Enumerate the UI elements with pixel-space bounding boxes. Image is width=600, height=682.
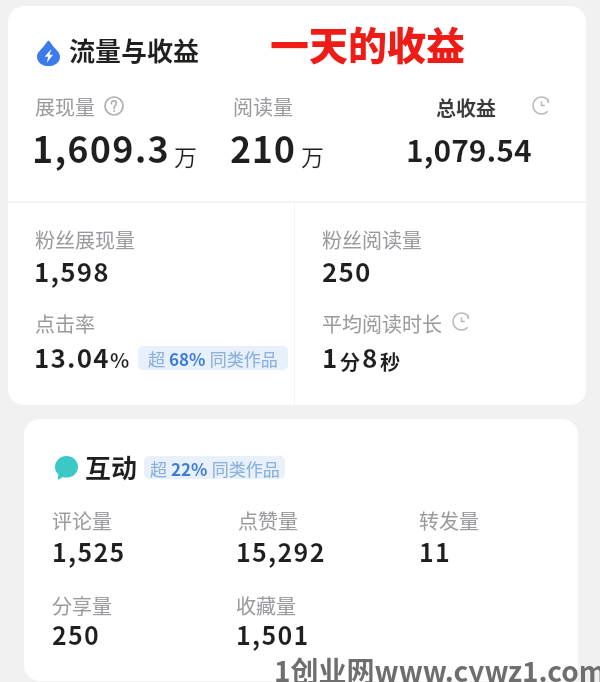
- staticText: 1,079.54: [406, 127, 532, 170]
- staticText: 分享量: [52, 591, 112, 620]
- staticText: 1,598: [34, 252, 110, 290]
- staticText: 250: [322, 252, 372, 290]
- staticText: 点击率: [35, 309, 95, 338]
- staticText: 万: [301, 139, 324, 172]
- staticText: 秒: [380, 347, 400, 376]
- staticText: 阅读量: [233, 92, 293, 121]
- button[interactable]: 数据更新时间: [532, 96, 551, 115]
- staticText: 1,525: [52, 533, 126, 569]
- staticText: 1,609.3: [32, 121, 171, 173]
- staticText: 万: [174, 139, 197, 172]
- staticText: 分: [340, 347, 360, 376]
- staticText: 超: [150, 456, 171, 479]
- staticText: 粉丝阅读量: [322, 225, 422, 254]
- staticText: 平均阅读时长: [322, 309, 442, 338]
- staticText: %: [110, 345, 130, 374]
- staticText: 11: [419, 533, 452, 569]
- staticText: 15,292: [236, 533, 326, 569]
- button[interactable]: 数据更新时间: [452, 312, 471, 331]
- staticText: 一天的收益: [270, 15, 466, 71]
- staticText: 展现量: [35, 92, 95, 121]
- button[interactable]: [24, 419, 578, 681]
- staticText: 粉丝展现量: [35, 225, 135, 254]
- staticText: 超: [148, 346, 169, 370]
- staticText: 同类作品: [208, 456, 280, 479]
- staticText: 同类作品: [206, 346, 278, 370]
- button[interactable]: 超: [144, 456, 285, 479]
- staticText: 转发量: [419, 506, 479, 535]
- button[interactable]: 超: [138, 346, 288, 370]
- staticText: 210: [230, 121, 296, 173]
- staticText: 收藏量: [236, 591, 296, 620]
- button[interactable]: [8, 6, 586, 405]
- staticText: 250: [52, 616, 101, 652]
- button[interactable]: 展现量说明: [104, 96, 124, 116]
- staticText: 1: [322, 338, 338, 376]
- staticText: 8: [362, 338, 378, 376]
- staticText: 22%: [171, 456, 208, 479]
- staticText: 流量与收益: [69, 31, 200, 69]
- staticText: 评论量: [52, 506, 112, 535]
- staticText: 总收益: [436, 93, 496, 122]
- staticText: 68%: [169, 346, 206, 370]
- staticText: 1创业网www.cywz1.com: [274, 650, 600, 682]
- staticText: 互动: [85, 448, 138, 486]
- staticText: 1,501: [236, 616, 310, 652]
- staticText: 点赞量: [238, 506, 298, 535]
- staticText: 13.04: [34, 338, 110, 376]
